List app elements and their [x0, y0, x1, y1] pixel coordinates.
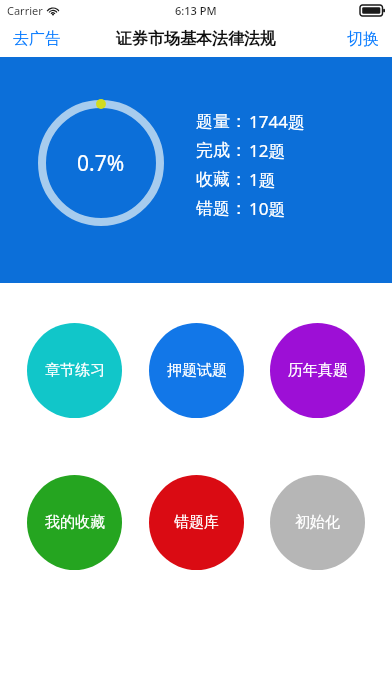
button[interactable]: 去广告	[0, 23, 71, 55]
staticText: 12题	[249, 139, 286, 162]
staticText: 错题：	[196, 198, 247, 219]
button[interactable]: 切换	[337, 23, 392, 55]
staticText: 完成：	[196, 140, 247, 161]
staticText: 0.7%	[77, 149, 125, 178]
button[interactable]: 押题试题	[149, 323, 244, 418]
button[interactable]: 初始化	[270, 475, 365, 570]
staticText: 6:13 PM	[175, 3, 217, 18]
staticText: 章节练习	[45, 361, 105, 380]
staticText: 1744题	[249, 110, 305, 133]
staticText: 我的收藏	[45, 513, 105, 532]
staticText: 10题	[249, 197, 286, 220]
staticText: 历年真题	[288, 361, 348, 380]
staticText: 收藏：	[196, 169, 247, 190]
button[interactable]: 章节练习	[27, 323, 122, 418]
staticText: 1题	[249, 168, 276, 191]
button[interactable]: 我的收藏	[27, 475, 122, 570]
staticText: 证券市场基本法律法规	[116, 29, 276, 49]
staticText: 去广告	[13, 29, 61, 49]
button[interactable]: 历年真题	[270, 323, 365, 418]
staticText: 押题试题	[167, 361, 227, 380]
staticText: Carrier	[7, 3, 43, 18]
staticText: 题量：	[196, 111, 247, 132]
staticText: 初始化	[295, 513, 340, 532]
staticText: 切换	[347, 29, 379, 49]
staticText: 错题库	[174, 513, 219, 532]
button[interactable]: 错题库	[149, 475, 244, 570]
